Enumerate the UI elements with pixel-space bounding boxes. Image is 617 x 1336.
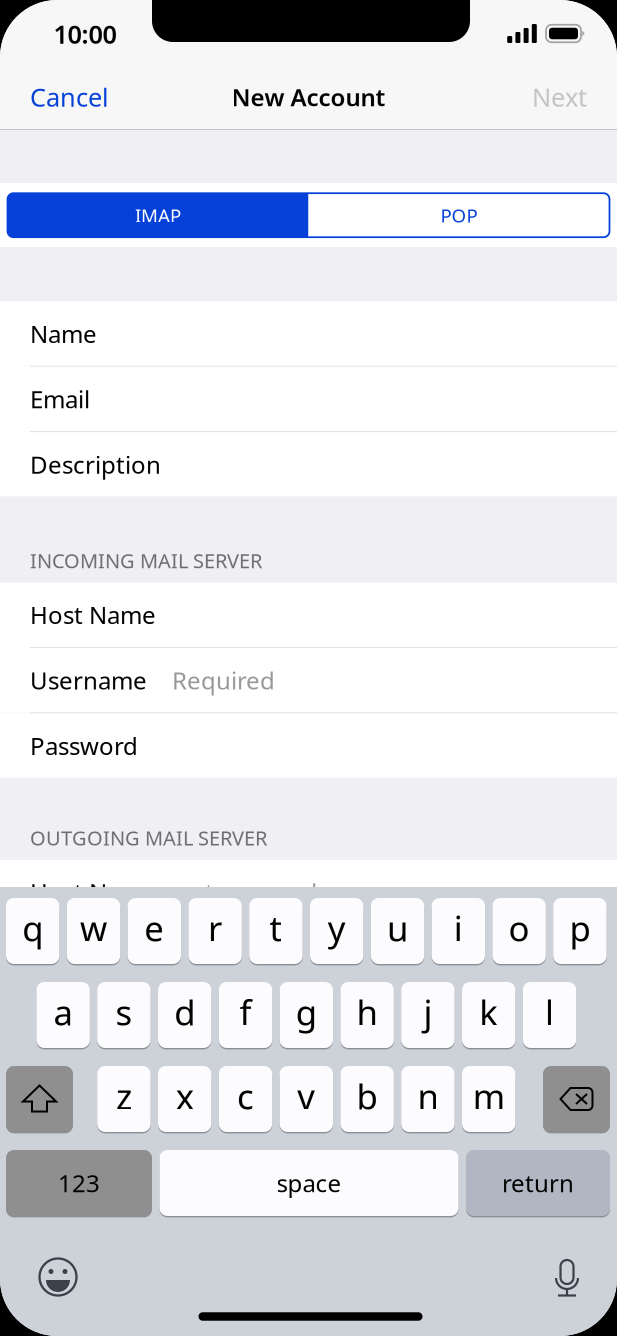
button[interactable]: Dictation — [541, 1253, 593, 1305]
button[interactable]: Description — [0, 432, 617, 497]
staticText: p — [569, 905, 590, 951]
staticText: c — [237, 1073, 254, 1119]
button[interactable]: Username — [0, 648, 617, 712]
button[interactable]: r — [188, 898, 242, 964]
button[interactable]: p — [553, 898, 607, 964]
button[interactable]: Name — [0, 301, 617, 366]
button[interactable]: t — [249, 898, 303, 964]
button[interactable]: IMAP — [7, 193, 308, 237]
button[interactable]: v — [280, 1066, 333, 1132]
staticText: t — [269, 905, 282, 951]
button[interactable]: Cancel — [0, 65, 125, 129]
staticText: Required — [172, 664, 275, 696]
button[interactable]: i — [432, 898, 485, 964]
staticText: d — [174, 989, 195, 1035]
staticText: OUTGOING MAIL SERVER — [30, 824, 267, 851]
staticText: i — [454, 905, 463, 951]
button[interactable]: Delete — [543, 1066, 610, 1132]
staticText: l — [545, 989, 554, 1035]
button[interactable]: space — [159, 1150, 458, 1216]
staticText: j — [423, 989, 432, 1035]
staticText: 123 — [58, 1167, 100, 1199]
staticText: s — [115, 989, 132, 1035]
staticText: r — [208, 905, 222, 951]
button[interactable]: l — [523, 982, 576, 1048]
button[interactable]: z — [97, 1066, 151, 1132]
button[interactable]: Username — [0, 925, 617, 990]
button[interactable]: a — [36, 982, 90, 1048]
staticText: Description — [30, 448, 161, 480]
button[interactable]: s — [97, 982, 151, 1048]
button[interactable]: o — [492, 898, 546, 964]
staticText: g — [296, 989, 317, 1035]
staticText: Host Name — [30, 876, 156, 908]
button[interactable]: h — [340, 982, 394, 1048]
button[interactable]: n — [401, 1066, 455, 1132]
staticText: u — [387, 905, 408, 951]
button[interactable]: y — [310, 898, 363, 964]
staticText: INCOMING MAIL SERVER — [30, 547, 262, 574]
button[interactable]: c — [219, 1066, 272, 1132]
button[interactable]: Emoji keyboard — [32, 1251, 84, 1303]
button[interactable]: Host Name — [0, 860, 617, 924]
staticText: o — [509, 905, 530, 951]
staticText: n — [417, 1073, 438, 1119]
button[interactable]: g — [280, 982, 333, 1048]
button[interactable]: Password — [0, 713, 617, 778]
button[interactable]: 123 — [6, 1150, 152, 1216]
button[interactable]: f — [219, 982, 272, 1048]
button[interactable]: return — [466, 1150, 610, 1216]
staticText: h — [357, 989, 378, 1035]
staticText: IMAP — [135, 203, 181, 228]
button[interactable]: w — [67, 898, 120, 964]
button[interactable]: e — [128, 898, 181, 964]
staticText: New Account — [231, 81, 385, 113]
button[interactable]: POP — [308, 193, 609, 237]
staticText: space — [276, 1167, 341, 1199]
staticText: y — [328, 905, 346, 951]
staticText: smtp.example.com — [172, 876, 386, 908]
staticText: k — [479, 989, 498, 1035]
button[interactable]: Email — [0, 367, 617, 431]
staticText: POP — [440, 203, 477, 228]
staticText: return — [502, 1167, 574, 1199]
button[interactable]: q — [6, 898, 59, 964]
button[interactable]: Host Name — [0, 583, 617, 647]
staticText: Email — [30, 383, 90, 415]
button[interactable]: b — [340, 1066, 394, 1132]
button[interactable]: j — [401, 982, 455, 1048]
button[interactable]: d — [158, 982, 211, 1048]
staticText: v — [297, 1073, 315, 1119]
staticText: q — [22, 905, 43, 951]
staticText: Username — [30, 664, 147, 696]
staticText: w — [80, 905, 107, 951]
button[interactable]: Shift — [6, 1066, 73, 1132]
staticText: Host Name — [30, 599, 156, 631]
staticText: Next — [532, 80, 587, 114]
staticText: e — [144, 905, 164, 951]
staticText: Username — [30, 941, 147, 973]
button[interactable]: x — [158, 1066, 211, 1132]
staticText: Cancel — [30, 80, 109, 114]
staticText: x — [176, 1073, 194, 1119]
staticText: m — [473, 1073, 505, 1119]
staticText: z — [116, 1073, 132, 1119]
staticText: 10:00 — [53, 17, 116, 51]
staticText: a — [54, 989, 73, 1035]
button[interactable]: m — [462, 1066, 515, 1132]
staticText: Name — [30, 318, 97, 350]
staticText: b — [357, 1073, 378, 1119]
staticText: Optional — [172, 941, 270, 973]
button[interactable]: k — [462, 982, 515, 1048]
button[interactable]: Next — [516, 65, 617, 129]
staticText: f — [239, 989, 251, 1035]
staticText: Password — [30, 730, 138, 762]
button[interactable]: u — [371, 898, 424, 964]
